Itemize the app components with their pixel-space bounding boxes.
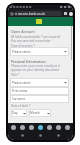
staticText: Day bbox=[12, 111, 18, 115]
button[interactable]: Account bbox=[9, 11, 14, 16]
button[interactable]: Shortcut 2 bbox=[28, 124, 35, 131]
staticText: First name bbox=[12, 89, 28, 93]
staticText: Personal Information bbox=[11, 59, 46, 64]
button[interactable]: Shortcut 1 bbox=[19, 124, 26, 131]
button[interactable]: Please select bbox=[10, 47, 69, 56]
button[interactable]: Month bbox=[29, 109, 51, 117]
button[interactable]: Tabs bbox=[63, 11, 68, 16]
staticText: Type of account * bbox=[11, 44, 35, 48]
staticText: Open Account bbox=[11, 29, 35, 34]
button[interactable]: secure.bank.co.uk bbox=[14, 11, 62, 16]
staticText: All fields marked with * are required bbox=[11, 35, 61, 39]
button[interactable]: Bank logo bbox=[8, 17, 73, 26]
button[interactable]: Shortcut 6 bbox=[64, 124, 71, 131]
staticText: Please select bbox=[12, 81, 31, 85]
staticText: Title * bbox=[11, 73, 20, 77]
button[interactable]: Surname bbox=[10, 95, 69, 103]
staticText: Surname bbox=[12, 97, 26, 101]
button[interactable]: Day bbox=[11, 109, 27, 117]
button[interactable]: Shortcut 0 bbox=[10, 124, 17, 131]
button[interactable]: Home bbox=[37, 132, 44, 139]
staticText: Date of birth * bbox=[11, 104, 31, 108]
staticText: secure.bank.co.uk bbox=[18, 12, 45, 16]
other: Bank logo bbox=[36, 19, 42, 24]
staticText: You can save and return later bbox=[11, 39, 51, 43]
button[interactable]: First name bbox=[10, 87, 69, 95]
button[interactable]: Please select bbox=[10, 78, 69, 87]
button[interactable]: Shortcut 5 bbox=[55, 124, 62, 131]
button[interactable]: Back bbox=[19, 132, 26, 139]
staticText: Month bbox=[30, 111, 40, 115]
staticText: Please enter your name exactly as it app… bbox=[11, 64, 69, 72]
button[interactable]: Shortcut 4 bbox=[46, 124, 53, 131]
button[interactable]: Recents bbox=[55, 132, 62, 139]
button[interactable]: More options bbox=[68, 11, 73, 16]
staticText: Please select bbox=[12, 50, 31, 54]
button[interactable]: Shortcut 3 bbox=[37, 124, 44, 131]
